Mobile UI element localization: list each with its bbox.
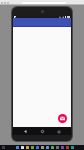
button[interactable]: Taskbar app <box>51 146 54 149</box>
button[interactable]: Taskbar app <box>41 146 44 149</box>
button[interactable]: Recent apps <box>55 128 62 135</box>
button[interactable]: Taskbar app <box>56 146 59 149</box>
button[interactable]: Home <box>39 128 46 135</box>
button[interactable]: Taskbar app <box>71 146 74 149</box>
button[interactable]: Taskbar app <box>66 146 69 149</box>
button[interactable]: Back <box>22 128 29 135</box>
button[interactable]: Taskbar app <box>31 146 34 149</box>
button[interactable]: Taskbar app <box>26 146 29 149</box>
button[interactable]: Taskbar app <box>61 146 64 149</box>
button[interactable]: Taskbar app <box>36 146 39 149</box>
button[interactable]: Taskbar app <box>21 146 24 149</box>
button[interactable]: Taskbar app <box>46 146 49 149</box>
button[interactable]: Taskbar app <box>16 146 19 149</box>
button[interactable]: Compose message <box>58 114 67 123</box>
